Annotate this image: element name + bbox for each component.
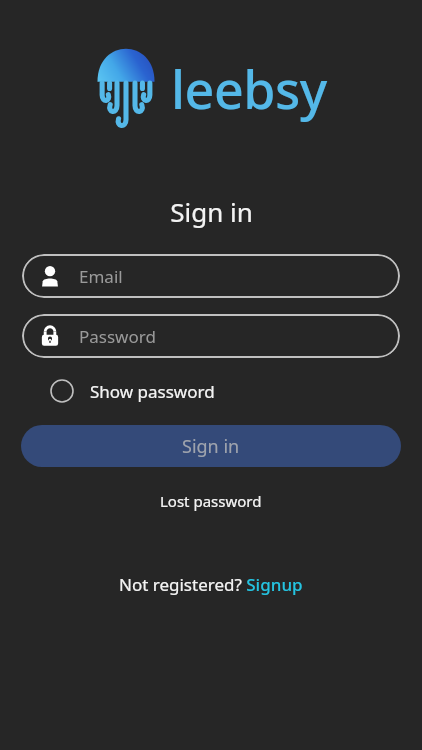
staticText: Sign in xyxy=(182,434,240,459)
button[interactable]: Password xyxy=(22,314,400,358)
staticText: leebsy xyxy=(171,53,327,124)
other: leebsy logo xyxy=(95,44,157,132)
button[interactable]: Show password xyxy=(22,373,400,409)
staticText: Not registered? Signup xyxy=(119,573,303,596)
staticText: Email xyxy=(79,265,123,288)
staticText: Lost password xyxy=(160,491,262,511)
button[interactable]: Email xyxy=(22,254,400,298)
staticText: Show password xyxy=(90,380,215,403)
button[interactable]: Lost password xyxy=(148,485,274,517)
button[interactable]: Sign in xyxy=(21,425,401,467)
other: Email xyxy=(39,265,61,287)
other: Password xyxy=(39,325,61,347)
staticText: Password xyxy=(79,325,156,348)
staticText: Sign in xyxy=(170,194,253,229)
button[interactable]: Not registered? Signup xyxy=(107,567,315,602)
